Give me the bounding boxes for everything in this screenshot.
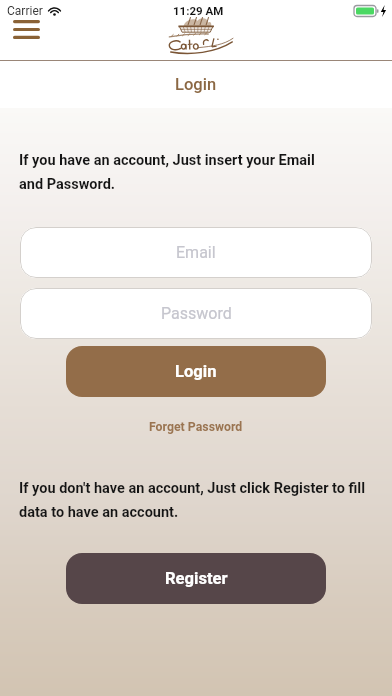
staticText: Carrier: [7, 4, 43, 18]
button[interactable]: Email: [20, 227, 372, 278]
staticText: 11:29 AM: [173, 4, 224, 17]
staticText: Register: [165, 569, 228, 588]
staticText: Password: [161, 304, 232, 323]
button[interactable]: Open navigation menu: [4, 15, 49, 44]
staticText: Login: [175, 75, 217, 94]
button[interactable]: Forget Password: [139, 416, 253, 438]
staticText: If you have an account, Just insert your…: [19, 152, 315, 192]
staticText: If you don't have an account, Just click…: [19, 480, 366, 520]
button[interactable]: Password: [20, 288, 372, 339]
staticText: Forget Password: [149, 420, 243, 434]
button[interactable]: Register: [66, 553, 326, 604]
staticText: Login: [175, 362, 217, 381]
button[interactable]: Login: [66, 346, 326, 397]
staticText: Email: [176, 243, 216, 262]
